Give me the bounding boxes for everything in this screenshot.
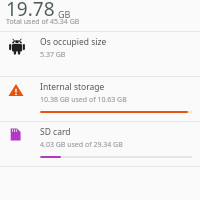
- staticText: 4.03 GB used of 29.34 GB: [40, 140, 123, 150]
- staticText: Total used of 45.34 GB: [6, 17, 80, 27]
- staticText: Os occupied size: [40, 36, 107, 48]
- staticText: SD card: [40, 126, 71, 138]
- staticText: 19.78: [6, 0, 55, 22]
- other: SD card: [8, 122, 40, 166]
- staticText: 10.38 GB used of 10.63 GB: [40, 95, 127, 105]
- other: OS occupied size: [8, 32, 40, 76]
- staticText: Internal storage: [40, 81, 105, 93]
- other: Internal storage: [8, 77, 40, 121]
- button[interactable]: Internal storage: [0, 77, 200, 121]
- button[interactable]: SD card: [0, 122, 200, 166]
- staticText: GB: [58, 8, 71, 20]
- button[interactable]: 19.78: [0, 0, 200, 31]
- button[interactable]: OS occupied size: [0, 32, 200, 76]
- staticText: 5.37 GB: [40, 50, 66, 60]
